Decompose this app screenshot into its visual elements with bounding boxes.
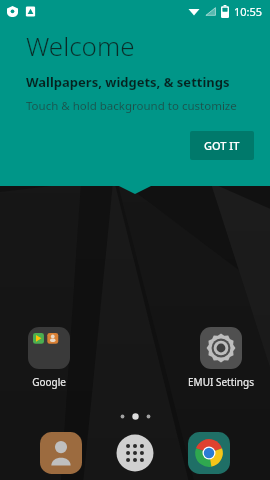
staticText: EMUI Settings <box>188 375 254 389</box>
staticText: Wallpapers, widgets, & settings <box>26 73 230 91</box>
button[interactable]: Contacts <box>40 432 82 474</box>
button[interactable]: All apps <box>114 432 156 474</box>
button[interactable]: GOT IT <box>190 131 254 160</box>
staticText: GOT IT <box>204 138 240 153</box>
button[interactable]: Google <box>12 325 86 391</box>
staticText: 10:55 <box>234 4 263 19</box>
button[interactable]: EMUI Settings <box>184 325 258 391</box>
staticText: Welcome <box>26 28 135 63</box>
button[interactable]: Chrome <box>188 432 230 474</box>
staticText: Google <box>32 375 66 389</box>
staticText: Touch & hold background to customize <box>26 98 237 114</box>
